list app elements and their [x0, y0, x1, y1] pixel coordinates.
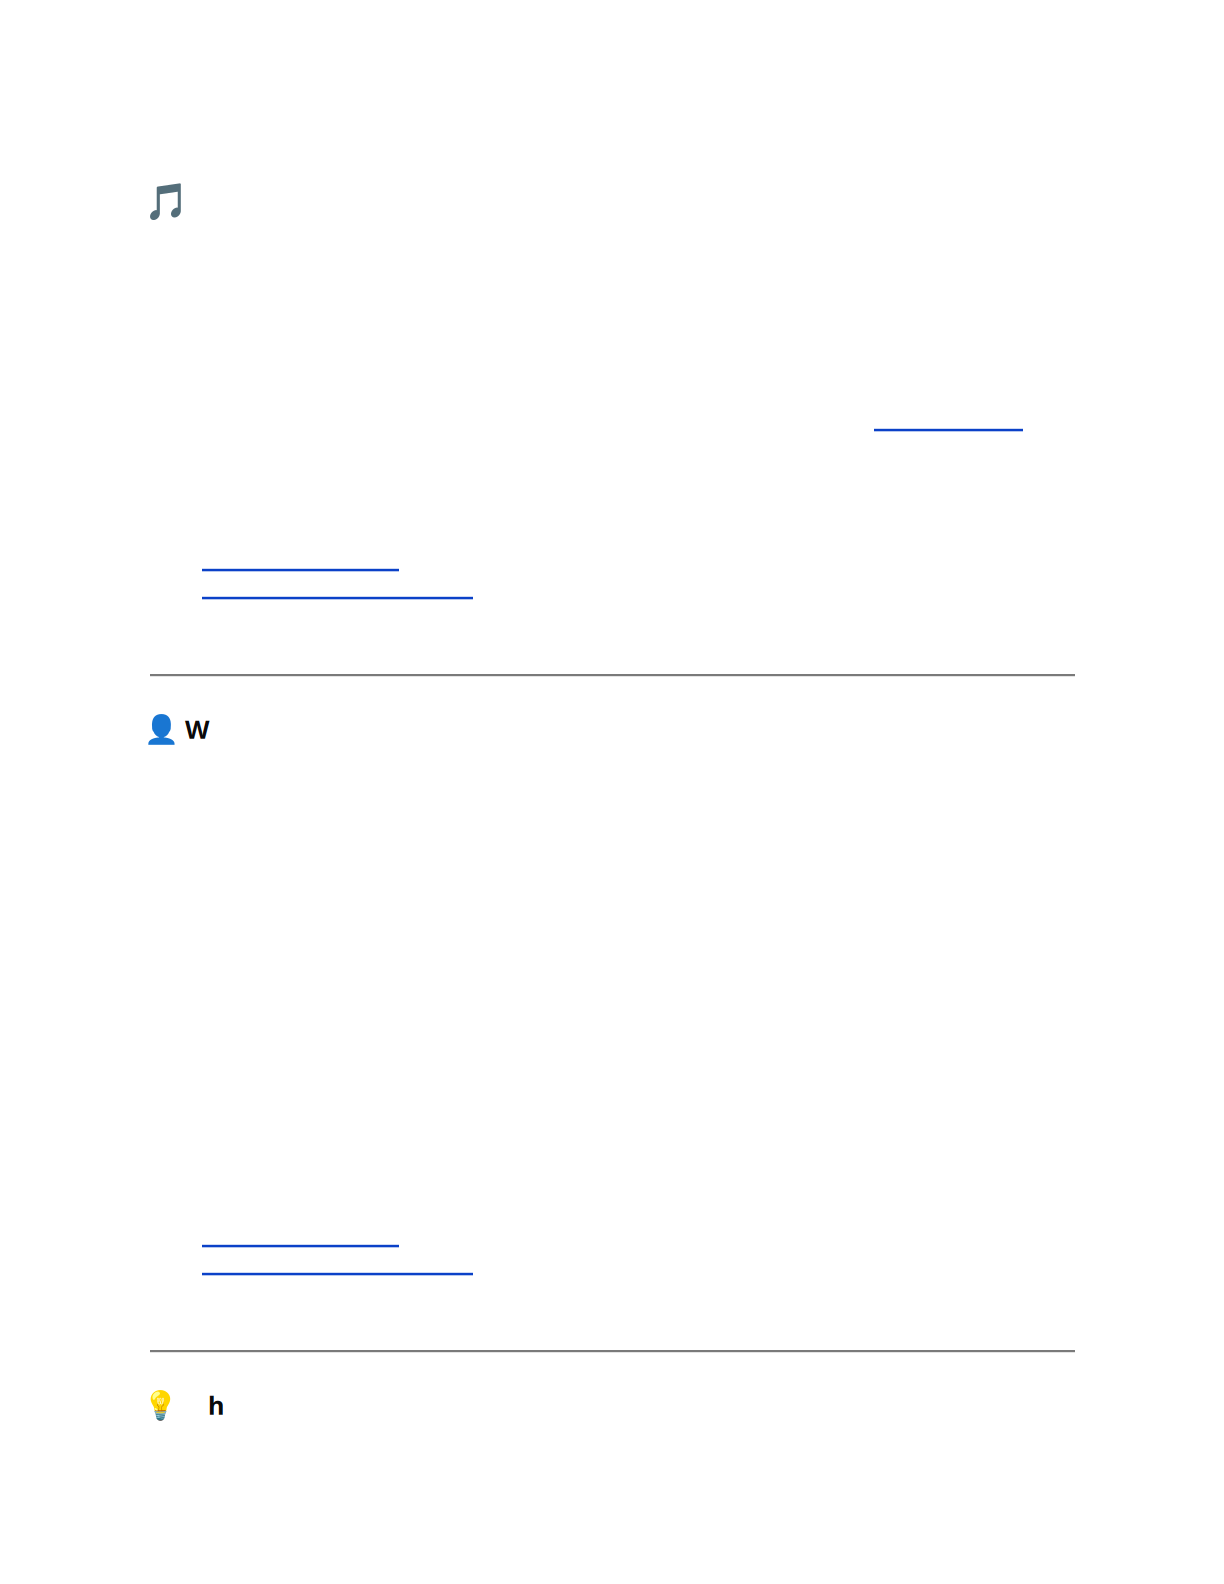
button[interactable]: Read the full story — [202, 1223, 399, 1247]
button[interactable]: Read the full story — [202, 547, 399, 571]
staticText: Listen here — [874, 407, 1006, 441]
staticText: 💡 — [143, 1389, 178, 1421]
staticText: 👤 — [144, 713, 179, 745]
staticText: W — [185, 712, 209, 746]
staticText: Read the full story — [202, 1223, 354, 1290]
staticText: Browse the complete archive — [202, 1251, 453, 1318]
button[interactable]: Browse the complete archive — [202, 575, 473, 599]
staticText: Read the full story — [202, 547, 354, 614]
staticText: Browse the complete archive — [202, 575, 453, 642]
staticText: h — [208, 1388, 224, 1422]
staticText: 🎵 — [144, 181, 189, 222]
button[interactable]: Listen here — [874, 407, 1023, 431]
button[interactable]: Browse the complete archive — [202, 1251, 473, 1275]
